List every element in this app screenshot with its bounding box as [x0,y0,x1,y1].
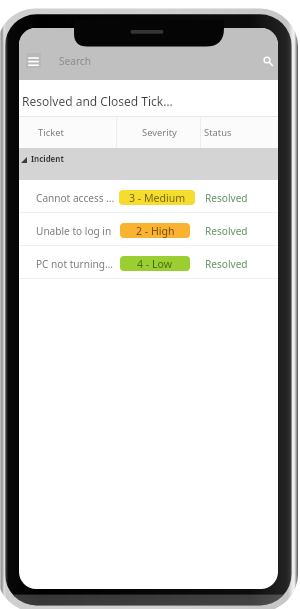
button[interactable]: PC not turning… [19,246,278,279]
button[interactable]: Unable to log in [19,213,278,246]
staticText: Unable to log in [36,224,112,238]
staticText: Resolved [205,257,248,271]
staticText: Cannot access … [36,191,115,205]
button[interactable]: Search [257,50,277,70]
staticText: Resolved [205,191,248,205]
staticText: Severity [142,126,177,139]
staticText: Search [59,54,91,68]
staticText: Incident [31,154,64,165]
button[interactable]: Cannot access … [19,180,278,213]
staticText: Resolved [205,224,248,238]
staticText: Ticket [38,126,64,139]
staticText: 3 - Medium [129,191,186,205]
staticText: Status [204,126,232,139]
button[interactable]: Incident [19,148,278,180]
staticText: 2 - High [136,224,175,238]
staticText: 4 - Low [137,257,173,271]
button[interactable]: Menu [26,53,41,68]
staticText: PC not turning… [36,257,114,271]
staticText: Resolved and Closed Tick… [22,93,173,109]
